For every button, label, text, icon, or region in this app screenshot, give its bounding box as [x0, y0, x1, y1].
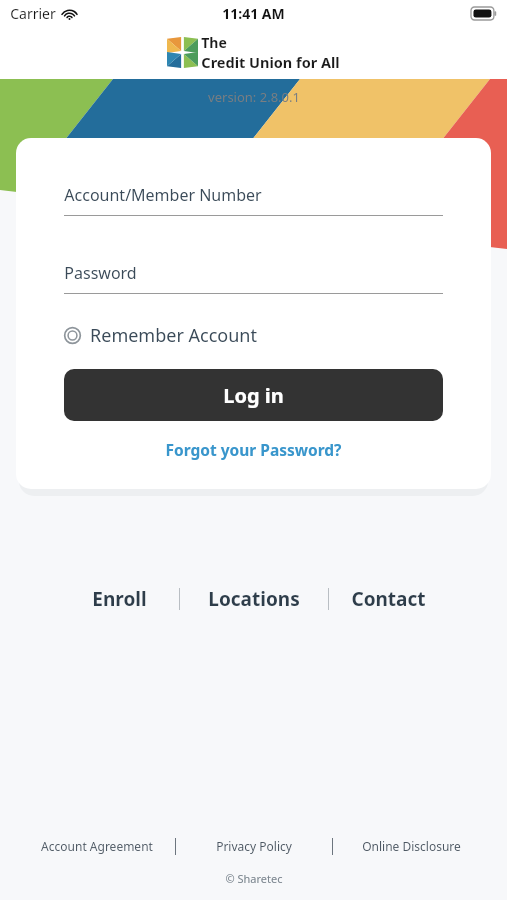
button[interactable]: Forgot your Password? — [64, 439, 443, 460]
button[interactable]: Locations — [180, 580, 328, 618]
staticText: Forgot your Password? — [165, 439, 342, 460]
staticText: Enroll — [92, 586, 147, 612]
staticText: Locations — [208, 586, 300, 612]
staticText: Account/Member Number — [64, 184, 262, 206]
staticText: The — [201, 33, 227, 52]
button[interactable]: Online Disclosure — [333, 833, 489, 859]
button[interactable]: Enroll — [60, 580, 179, 618]
staticText: Contact — [351, 586, 426, 612]
button[interactable]: Account/Member Number — [64, 184, 443, 216]
staticText: Carrier — [10, 4, 56, 23]
staticText: Account Agreement — [41, 838, 153, 854]
staticText: Privacy Policy — [216, 838, 292, 854]
staticText: Log in — [223, 382, 284, 409]
staticText: Online Disclosure — [362, 838, 461, 854]
staticText: Remember Account — [90, 323, 257, 348]
button[interactable]: Log in — [64, 369, 443, 421]
staticText: Credit Union for All — [201, 52, 340, 72]
staticText: 11:41 AM — [222, 4, 285, 23]
button[interactable]: Account Agreement — [18, 833, 175, 859]
button[interactable]: Contact — [329, 580, 447, 618]
button[interactable]: Privacy Policy — [176, 833, 332, 859]
staticText: version: 2.8.0.1 — [208, 88, 300, 106]
staticText: © Sharetec — [225, 871, 283, 886]
button[interactable]: Password — [64, 262, 443, 294]
staticText: Password — [64, 262, 137, 284]
button[interactable]: Remember Account — [64, 323, 443, 348]
